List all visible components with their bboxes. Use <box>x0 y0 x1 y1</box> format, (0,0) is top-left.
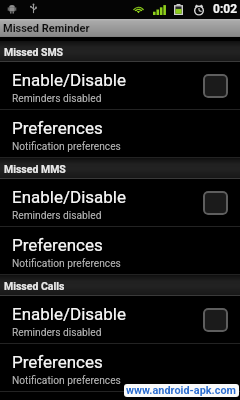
button[interactable]: Preferences <box>0 110 240 158</box>
staticText: Reminders disabled <box>12 93 102 105</box>
staticText: www.android-apk.com <box>126 384 237 397</box>
staticText: Preferences <box>12 118 103 138</box>
button[interactable]: Preferences <box>0 227 240 275</box>
staticText: Reminders disabled <box>12 210 102 222</box>
staticText: Missed MMS <box>4 163 66 175</box>
staticText: Notification preferences <box>12 375 121 387</box>
staticText: Missed SMS <box>4 46 64 58</box>
staticText: 0:02 <box>213 2 238 16</box>
button[interactable]: Enable/Disable <box>0 62 240 110</box>
button[interactable]: Preferences <box>0 344 240 392</box>
staticText: Enable/Disable <box>12 187 127 207</box>
staticText: Enable/Disable <box>12 304 127 324</box>
staticText: Preferences <box>12 352 103 372</box>
button[interactable]: Enable/Disable <box>0 296 240 344</box>
staticText: Notification preferences <box>12 141 121 153</box>
staticText: Notification preferences <box>12 258 121 270</box>
staticText: Missed Calls <box>4 280 65 292</box>
staticText: Reminders disabled <box>12 327 102 339</box>
staticText: Missed Reminder <box>3 22 90 35</box>
staticText: Enable/Disable <box>12 70 127 90</box>
other: Toggle Enable/Disable <box>203 74 228 98</box>
button[interactable]: Enable/Disable <box>0 179 240 227</box>
other: Toggle Enable/Disable <box>203 191 228 215</box>
staticText: Preferences <box>12 235 103 255</box>
other: Toggle Enable/Disable <box>203 308 228 332</box>
